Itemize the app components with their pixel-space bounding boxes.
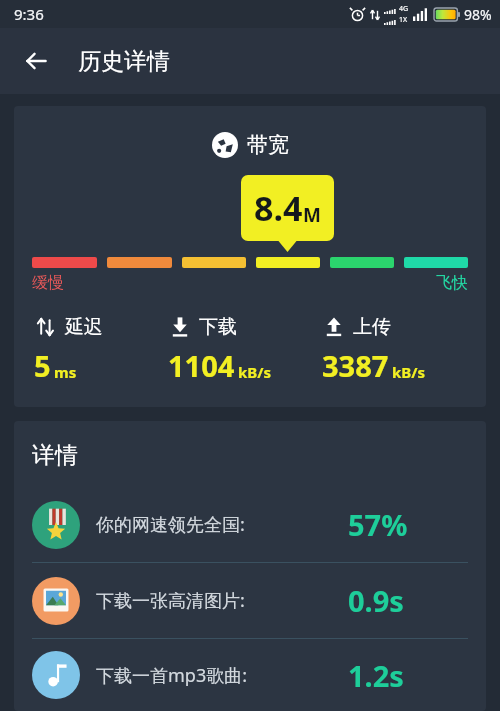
staticText: ms [54, 362, 77, 382]
staticText: 57% [348, 505, 408, 544]
staticText: 5 [34, 346, 51, 385]
staticText: 详情 [32, 441, 78, 470]
staticText: 9:36 [14, 4, 44, 24]
staticText: 0.9s [348, 581, 404, 620]
staticText: 3387 [322, 346, 389, 385]
staticText: M [303, 202, 321, 228]
staticText: 1104 [168, 346, 235, 385]
staticText: 下载 [199, 315, 237, 339]
staticText: 1.2s [348, 656, 404, 695]
staticText: 8.4 [254, 185, 303, 231]
staticText: 98% [464, 5, 492, 24]
staticText: kB/s [238, 362, 272, 382]
staticText: 带宽 [247, 132, 289, 158]
staticText: 缓慢 [32, 273, 64, 293]
button[interactable]: Back [14, 39, 58, 83]
staticText: 你的网速领先全国: [96, 512, 245, 537]
button[interactable]: 你的网速领先全国: [14, 487, 486, 562]
staticText: 下载一首mp3歌曲: [96, 663, 248, 688]
staticText: 上传 [353, 315, 391, 339]
button[interactable]: 下载一张高清图片: [14, 563, 486, 638]
staticText: 1X [399, 15, 408, 25]
staticText: 飞快 [436, 273, 468, 293]
staticText: kB/s [392, 362, 426, 382]
staticText: 下载一张高清图片: [96, 588, 245, 613]
staticText: 延迟 [65, 315, 103, 339]
staticText: 4G [399, 4, 409, 14]
button[interactable]: 下载一首mp3歌曲: [14, 639, 486, 711]
staticText: 历史详情 [78, 47, 170, 76]
